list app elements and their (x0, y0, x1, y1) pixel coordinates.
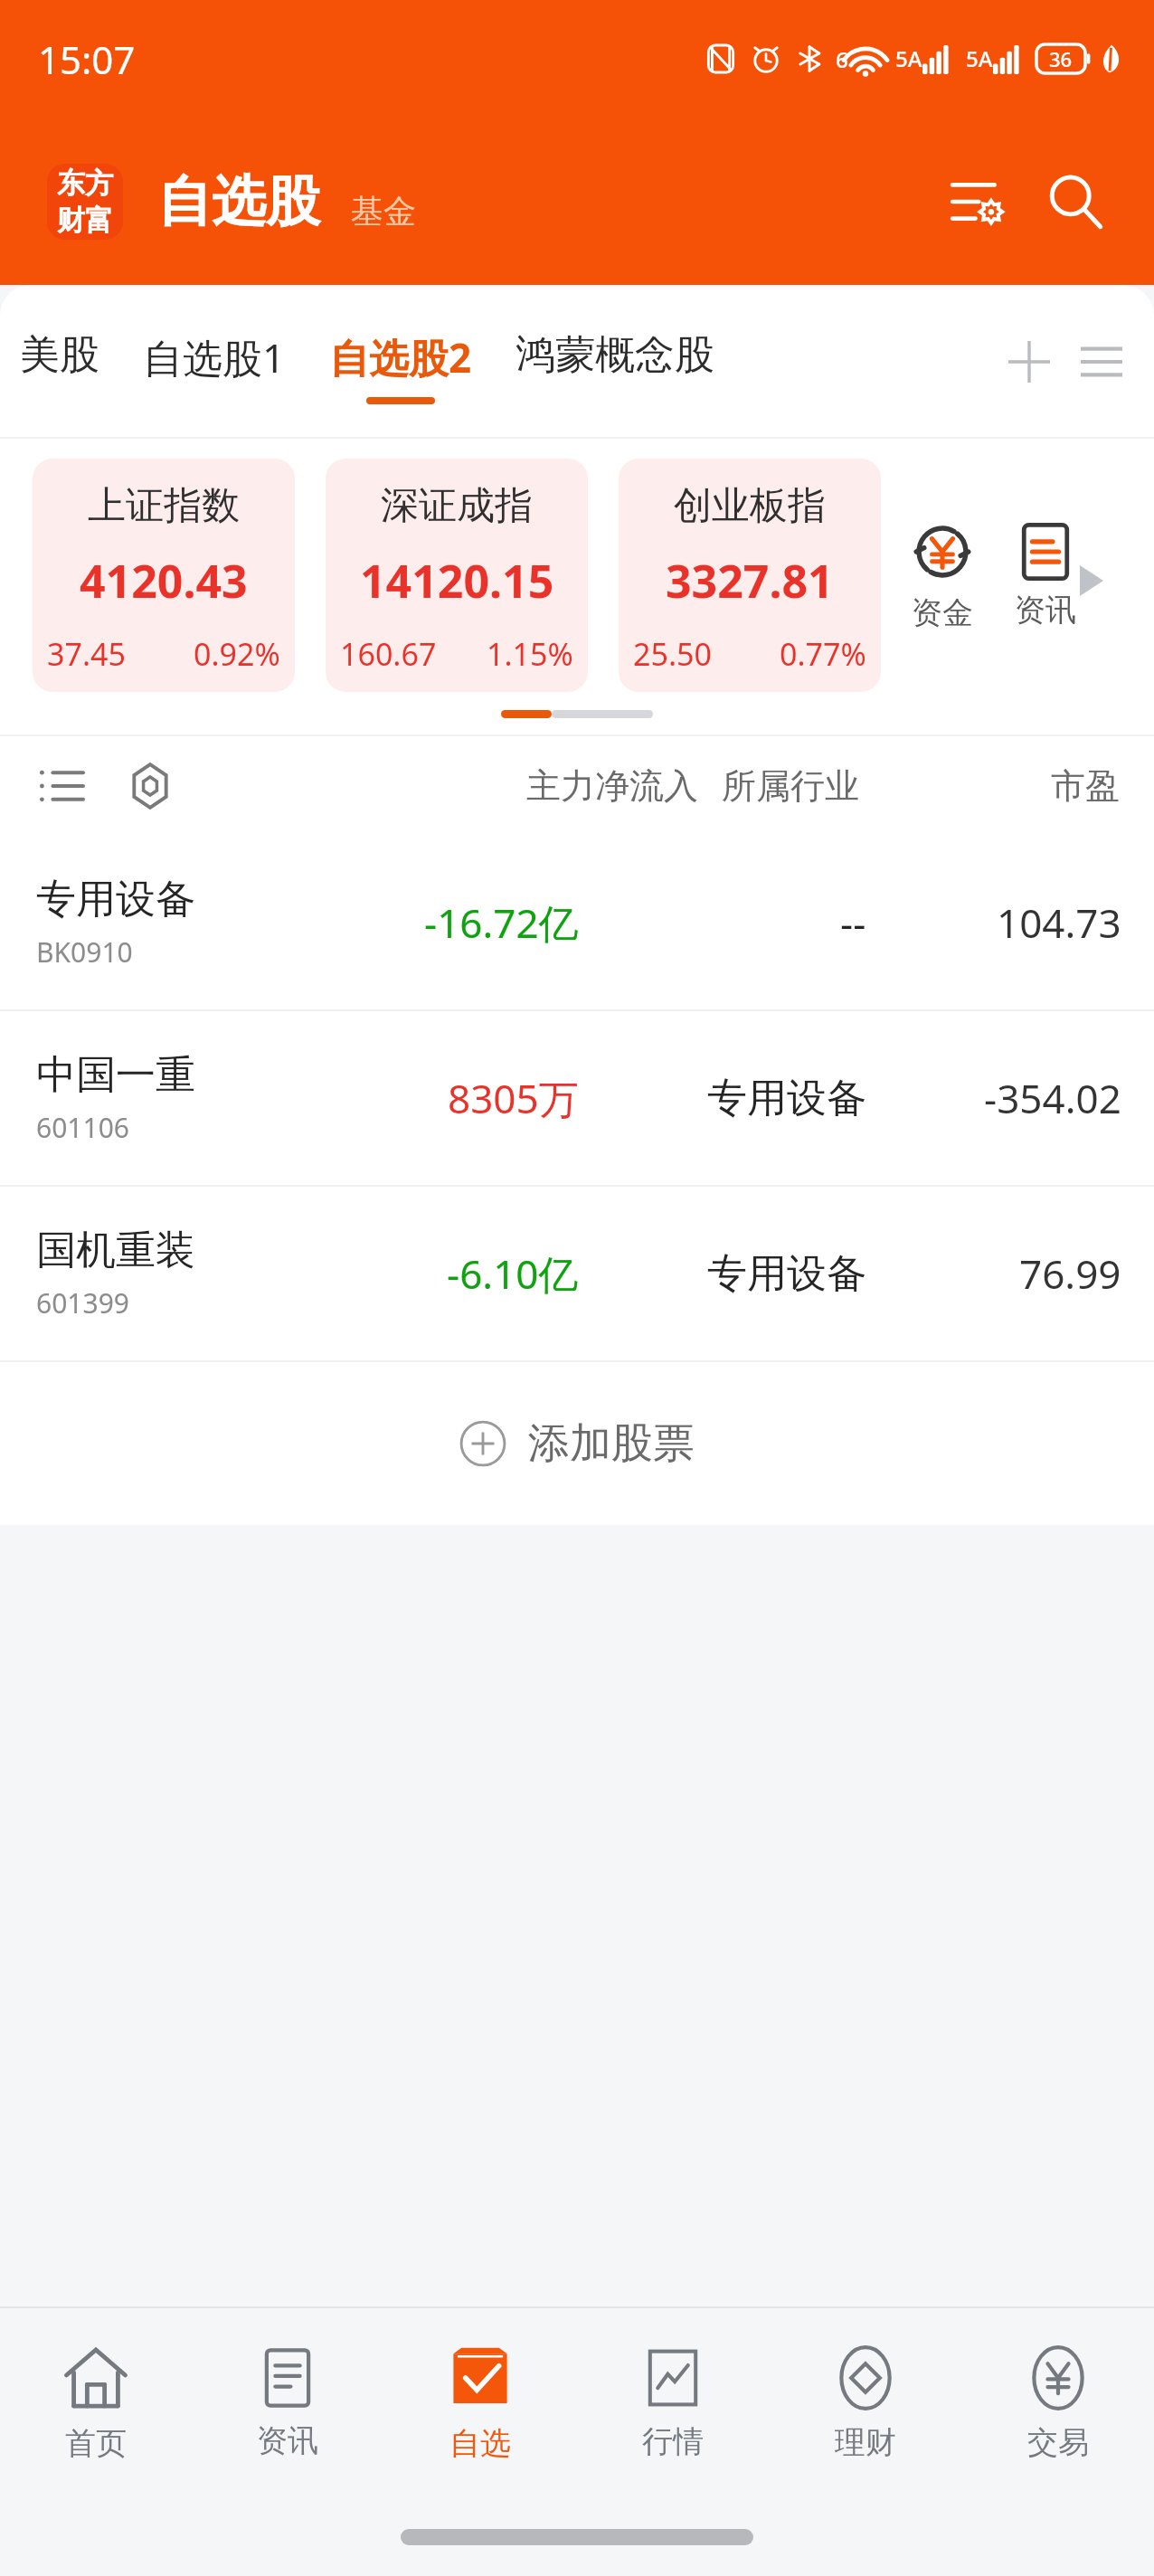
staticText: 601399 (36, 1284, 129, 1321)
button[interactable]: 市盈 (1051, 764, 1120, 808)
staticText: 0.77% (780, 633, 866, 675)
staticText: 25.50 (633, 633, 712, 675)
staticText: 自选股2 (329, 330, 472, 384)
staticText: 0.92% (194, 633, 280, 675)
staticText: 3327.81 (666, 550, 834, 611)
staticText: 自选 (449, 2424, 511, 2463)
button[interactable]: 资讯 (192, 2308, 383, 2498)
button[interactable]: 所属行业 (722, 764, 859, 808)
staticText: 专用设备 (36, 875, 195, 924)
button[interactable]: Settings (939, 163, 1017, 241)
staticText: 行情 (642, 2422, 704, 2461)
staticText: 资讯 (257, 2421, 318, 2460)
button[interactable]: 资金 (906, 516, 979, 636)
button[interactable]: 鸿蒙概念股 (512, 330, 718, 393)
button[interactable]: 主力净流入 (526, 764, 698, 808)
staticText: 上证指数 (88, 482, 240, 530)
staticText: 5A (895, 43, 922, 73)
button[interactable]: 专用设备 (0, 836, 1154, 1009)
staticText: 1.15% (487, 633, 573, 675)
staticText: 自选股 (157, 167, 320, 236)
staticText: -354.02 (984, 1071, 1121, 1125)
staticText: -- (840, 895, 866, 950)
button[interactable]: 创业板指 (619, 459, 881, 692)
button[interactable]: 资讯 (1011, 518, 1080, 633)
button[interactable]: Search (1036, 163, 1114, 241)
staticText: 资金 (912, 593, 973, 632)
staticText: 8305万 (448, 1071, 579, 1125)
staticText: 15:07 (38, 33, 136, 85)
staticText: 76.99 (1019, 1246, 1121, 1301)
button[interactable]: 自选 (383, 2308, 576, 2498)
button[interactable]: 中国一重 (0, 1011, 1154, 1185)
staticText: 36 (1049, 45, 1073, 72)
staticText: 37.45 (47, 633, 126, 675)
button[interactable]: Manage groups (1065, 330, 1138, 393)
staticText: 6 (836, 44, 848, 74)
button[interactable]: 上证指数 (33, 459, 295, 692)
button[interactable]: View mode (123, 759, 177, 813)
staticText: 交易 (1027, 2423, 1089, 2462)
staticText: 14120.15 (360, 550, 554, 611)
staticText: 鸿蒙概念股 (516, 330, 714, 380)
button[interactable]: 基金 (351, 191, 416, 232)
button[interactable]: Sort (34, 759, 89, 813)
button[interactable]: 交易 (961, 2308, 1154, 2498)
staticText: 深证成指 (381, 482, 533, 530)
staticText: 首页 (65, 2424, 127, 2463)
staticText: 160.67 (340, 633, 437, 675)
button[interactable]: 添加股票 (0, 1362, 1154, 1525)
staticText: 美股 (20, 330, 99, 380)
staticText: 专用设备 (707, 1074, 866, 1123)
button[interactable]: 首页 (0, 2308, 192, 2498)
staticText: 添加股票 (528, 1417, 695, 1470)
staticText: 财富 (57, 203, 113, 238)
staticText: -16.72亿 (424, 895, 579, 950)
staticText: 自选股1 (143, 330, 286, 384)
staticText: 东方 (57, 166, 113, 201)
button[interactable]: 国机重装 (0, 1187, 1154, 1360)
button[interactable]: 理财 (769, 2308, 961, 2498)
staticText: 104.73 (997, 895, 1121, 950)
staticText: 4120.43 (80, 550, 248, 611)
staticText: BK0910 (36, 933, 133, 971)
staticText: 国机重装 (36, 1226, 195, 1275)
staticText: 5A (966, 43, 993, 73)
button[interactable]: 行情 (576, 2308, 769, 2498)
button[interactable]: 自选股1 (139, 330, 289, 397)
button[interactable]: 深证成指 (326, 459, 588, 692)
staticText: 理财 (835, 2423, 896, 2462)
staticText: 中国一重 (36, 1050, 195, 1100)
button[interactable]: 美股 (16, 330, 103, 393)
staticText: 创业板指 (674, 482, 826, 530)
staticText: 资讯 (1015, 591, 1076, 630)
button[interactable]: 自选股2 (326, 330, 476, 404)
staticText: 601106 (36, 1109, 129, 1146)
staticText: -6.10亿 (447, 1246, 579, 1301)
button[interactable]: Add group (993, 330, 1065, 393)
staticText: 专用设备 (707, 1249, 866, 1299)
